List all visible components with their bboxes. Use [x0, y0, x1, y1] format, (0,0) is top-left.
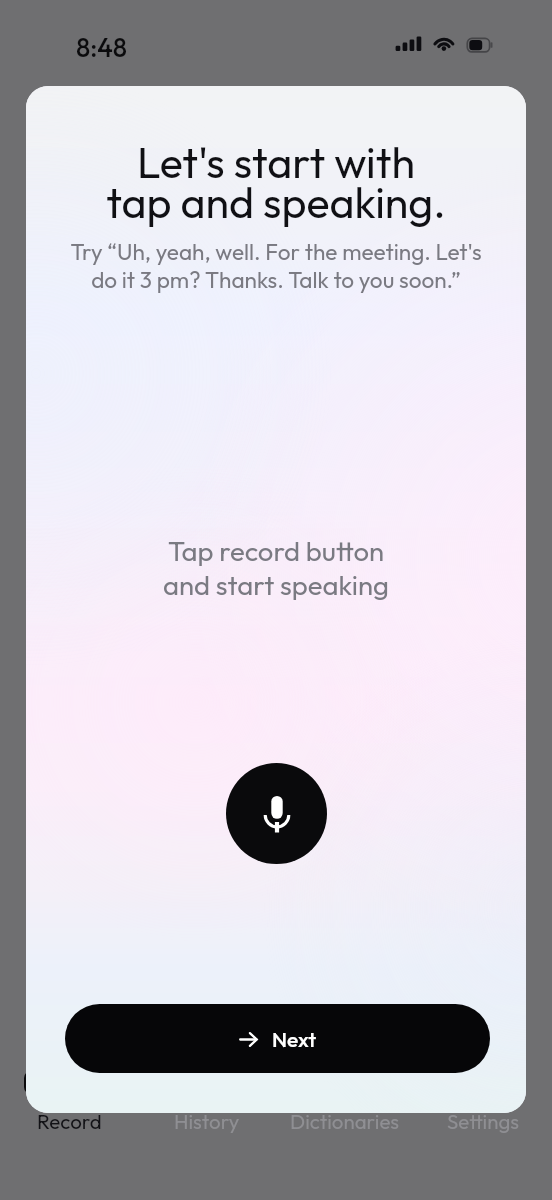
button[interactable]: Record: [0, 1099, 138, 1143]
staticText: 8:48: [76, 31, 128, 64]
button[interactable]: History: [138, 1099, 276, 1143]
button[interactable]: Dictionaries: [276, 1099, 414, 1143]
staticText: Settings: [447, 1108, 520, 1134]
staticText: Try “Uh, yeah, well. For the meeting. Le…: [26, 237, 526, 293]
staticText: Tap record button and start speaking: [26, 533, 526, 602]
staticText: Let's start with tap and speaking.: [26, 135, 526, 229]
staticText: History: [174, 1108, 240, 1134]
button[interactable]: Settings: [414, 1099, 552, 1143]
button[interactable]: Next: [65, 1004, 490, 1073]
staticText: Record: [37, 1108, 102, 1134]
staticText: Next: [272, 1026, 317, 1052]
button[interactable]: Record: [226, 763, 327, 864]
staticText: Dictionaries: [290, 1108, 400, 1134]
